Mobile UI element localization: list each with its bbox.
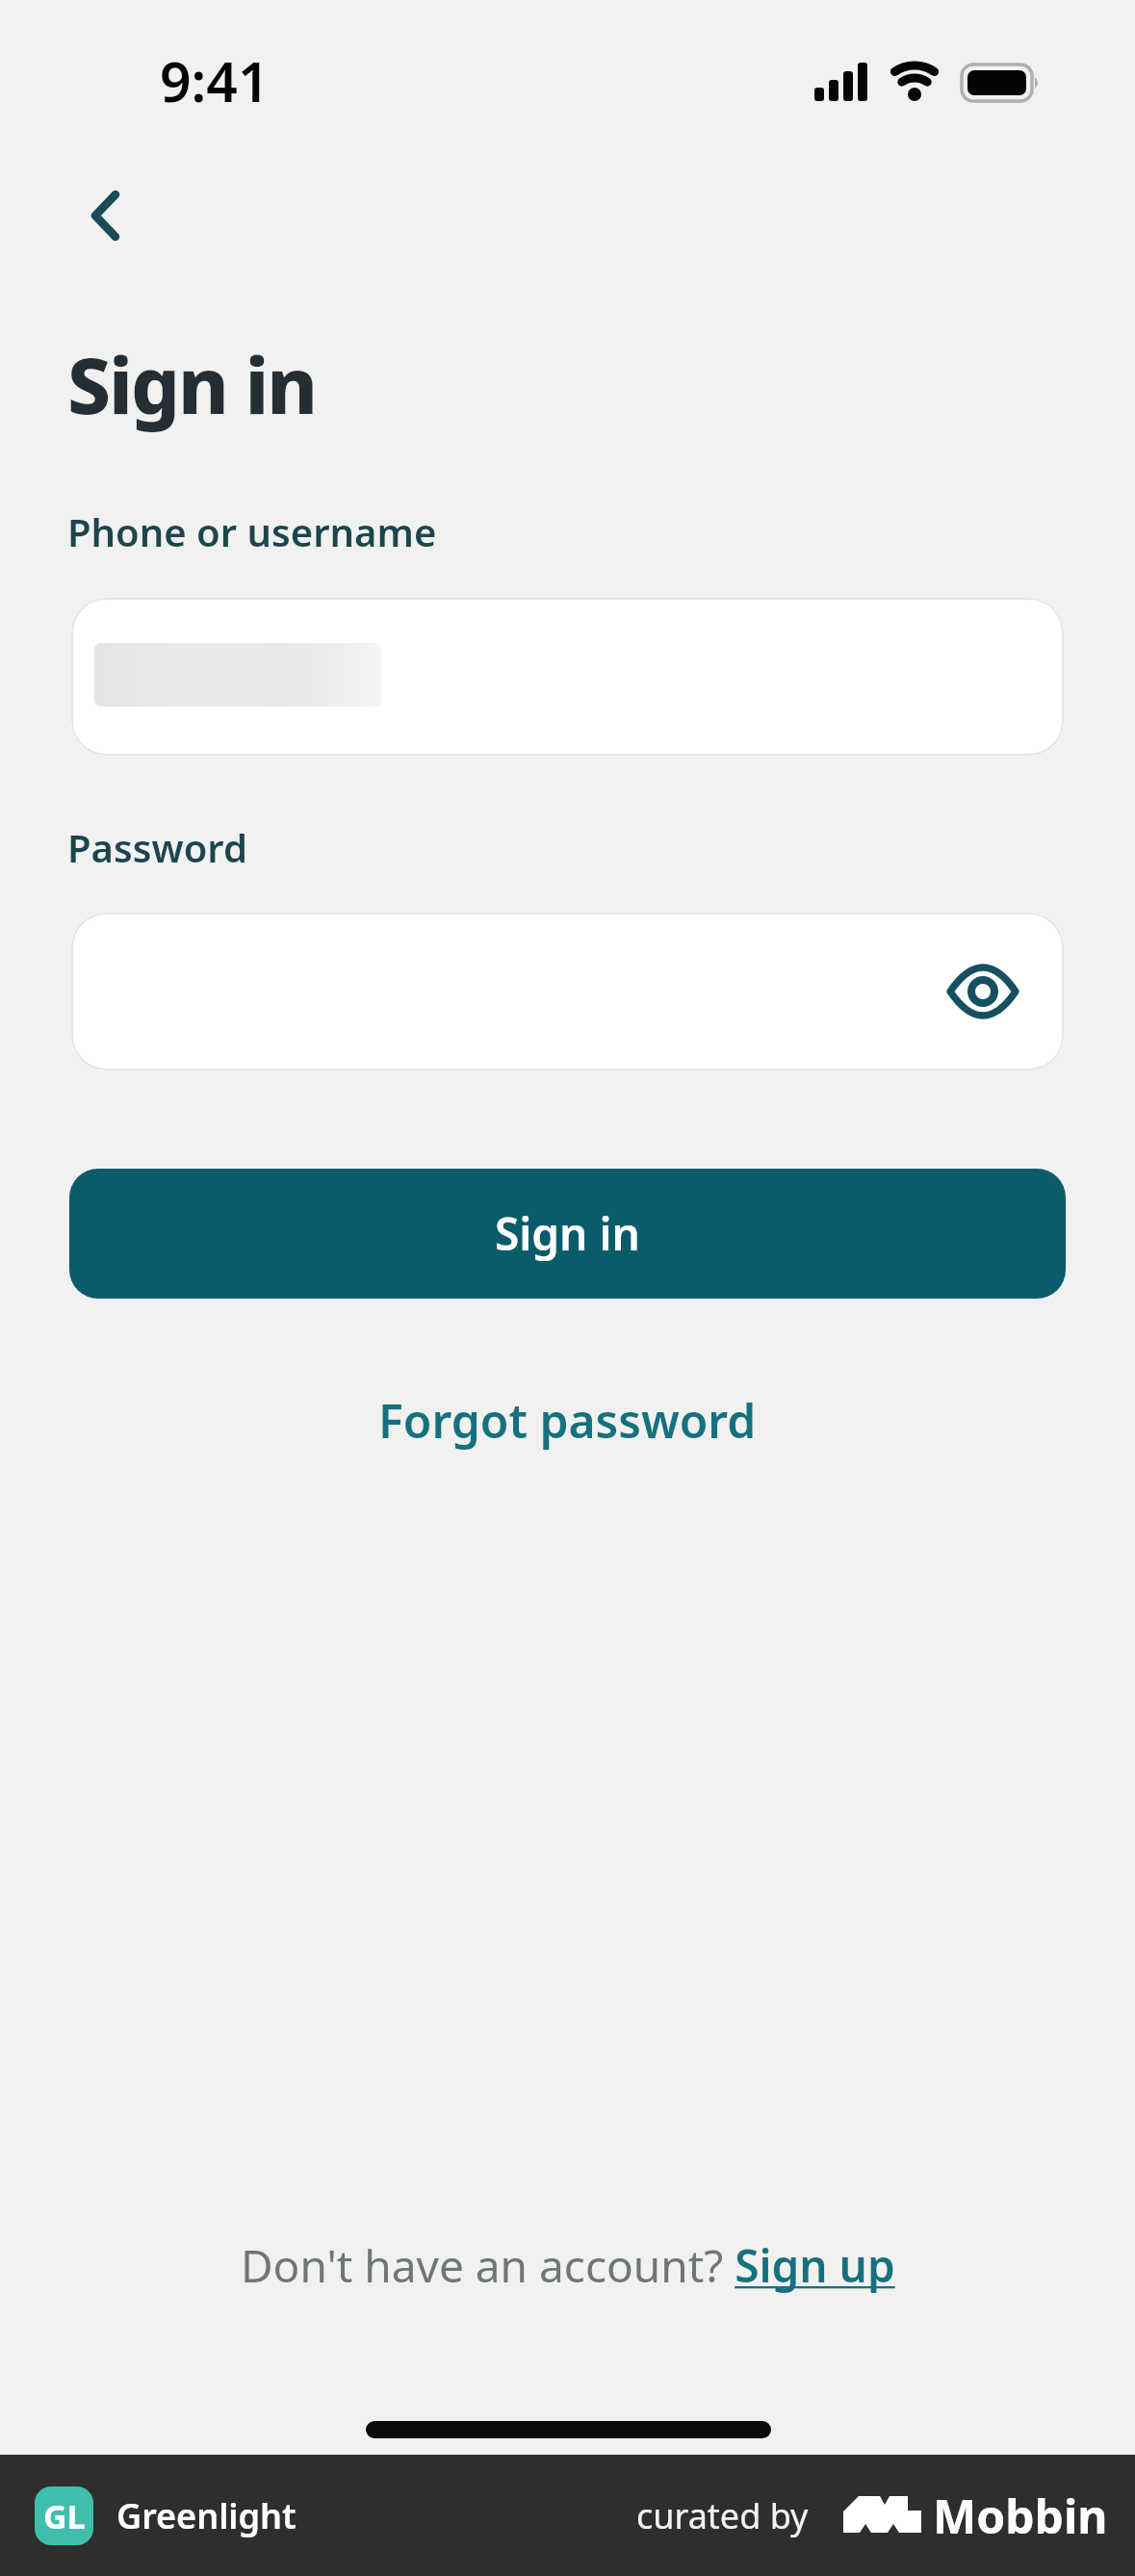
staticText: Greenlight (116, 2492, 297, 2539)
button[interactable] (71, 598, 1064, 756)
staticText: GL (43, 2494, 86, 2538)
button[interactable] (946, 961, 1019, 1022)
staticText: Don't have an account? Sign up (241, 2235, 895, 2296)
button[interactable]: Don't have an account? Sign up (241, 2235, 895, 2296)
staticText: curated by (636, 2492, 809, 2539)
button[interactable] (69, 181, 139, 250)
staticText: Phone or username (67, 505, 437, 557)
staticText: Sign in (495, 1203, 640, 1264)
staticText: Sign in (67, 331, 316, 436)
staticText: Password (67, 821, 247, 873)
staticText: Forgot password (378, 1389, 757, 1452)
staticText: 9:41 (160, 43, 270, 118)
button[interactable] (71, 913, 1064, 1070)
button[interactable]: Forgot password (367, 1383, 768, 1457)
staticText: Mobbin (933, 2485, 1108, 2547)
button[interactable]: Sign in (69, 1169, 1066, 1299)
